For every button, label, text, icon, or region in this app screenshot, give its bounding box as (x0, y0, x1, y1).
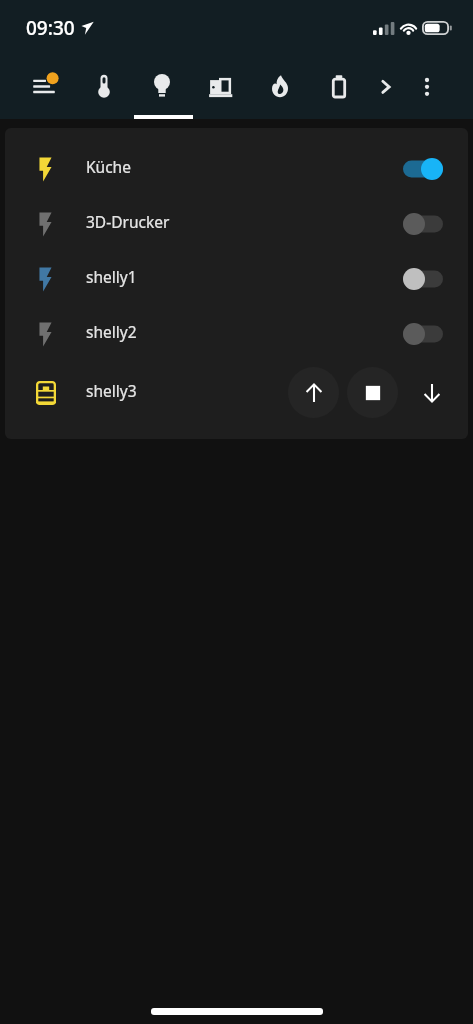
button[interactable]: Up (288, 367, 339, 418)
button[interactable]: More tabs (362, 62, 410, 110)
button[interactable]: Doors (197, 62, 245, 110)
staticText: 3D-Drucker (86, 211, 170, 232)
button[interactable]: Temperature (80, 62, 128, 110)
staticText: shelly1 (86, 266, 137, 287)
staticText: shelly2 (86, 321, 137, 342)
button[interactable]: Energy (315, 62, 363, 110)
staticText: shelly3 (86, 380, 137, 401)
button[interactable]: shelly1 (5, 251, 468, 306)
staticText: Küche (86, 156, 131, 177)
button[interactable]: Stop (347, 367, 398, 418)
button[interactable]: Lights (138, 62, 186, 110)
button[interactable]: Toggle (399, 262, 447, 296)
button[interactable]: shelly2 (5, 306, 468, 361)
button[interactable]: 3D-Drucker (5, 196, 468, 251)
button[interactable]: More options (403, 62, 451, 110)
button[interactable]: Toggle (399, 317, 447, 351)
staticText: 09:30 (26, 15, 75, 41)
button[interactable]: Toggle (399, 152, 447, 186)
button[interactable]: Down (406, 367, 457, 418)
button[interactable]: Heating (256, 62, 304, 110)
button[interactable]: Favorites (20, 62, 68, 110)
button[interactable]: Toggle (399, 207, 447, 241)
button[interactable]: Küche (5, 141, 468, 196)
